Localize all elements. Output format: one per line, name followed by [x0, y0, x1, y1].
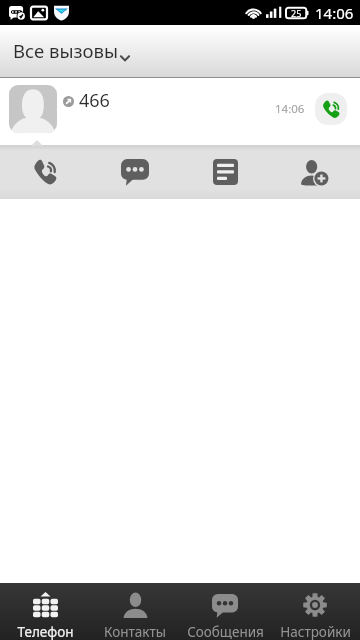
staticText: Настройки: [280, 623, 351, 640]
button[interactable]: Телефон: [0, 583, 90, 640]
staticText: 14:06: [275, 101, 305, 117]
button[interactable]: Настройки: [270, 583, 360, 640]
staticText: 466: [79, 88, 110, 113]
button[interactable]: Details: [180, 145, 270, 199]
staticText: Телефон: [17, 623, 74, 640]
staticText: Контакты: [104, 623, 166, 640]
staticText: 14:06: [315, 3, 354, 23]
button[interactable]: 466: [0, 78, 360, 145]
staticText: Сообщения: [187, 623, 264, 640]
staticText: 25: [291, 7, 302, 19]
button[interactable]: Call: [0, 145, 90, 199]
button[interactable]: Add contact: [270, 145, 360, 199]
button[interactable]: Все вызовы: [0, 25, 360, 78]
button[interactable]: Контакты: [90, 583, 180, 640]
button[interactable]: Сообщения: [180, 583, 270, 640]
staticText: Все вызовы: [13, 38, 118, 63]
button[interactable]: Call back: [315, 93, 347, 125]
button[interactable]: Send message: [90, 145, 180, 199]
